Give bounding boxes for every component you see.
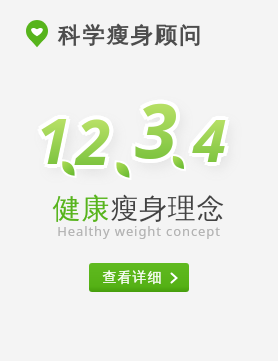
staticText: 4 [196, 101, 230, 183]
staticText: 1 [36, 98, 71, 182]
staticText: 2 [79, 102, 114, 186]
staticText: 2 [79, 96, 114, 180]
staticText: 1 [36, 102, 71, 186]
staticText: 3 [135, 81, 177, 185]
staticText: 3 [138, 74, 180, 178]
staticText: 健康瘦身理念 [0, 191, 278, 226]
staticText: 4 [189, 98, 223, 180]
staticText: 2 [76, 99, 111, 183]
staticText: 3 [135, 73, 177, 177]
staticText: 2 [80, 99, 115, 183]
staticText: 4 [197, 98, 231, 180]
staticText: 查看详细 [102, 269, 162, 287]
staticText: 1 [39, 95, 74, 179]
staticText: 3 [139, 77, 181, 181]
staticText: 4 [196, 95, 230, 177]
staticText: 1 [32, 98, 67, 182]
staticText: 3 [131, 77, 173, 181]
staticText: 2 [76, 95, 111, 179]
button[interactable]: 查看详细 [89, 263, 189, 292]
staticText: 2 [76, 103, 111, 187]
button[interactable]: 科学瘦身顾问 [24, 17, 204, 48]
staticText: 3 [135, 77, 177, 181]
staticText: 4 [193, 98, 227, 180]
staticText: 科学瘦身顾问 [58, 22, 204, 50]
staticText: 4 [190, 101, 224, 183]
staticText: 3 [132, 74, 174, 178]
staticText: 2 [73, 96, 108, 180]
staticText: 1 [40, 98, 75, 182]
staticText: 4 [190, 95, 224, 177]
staticText: 2 [72, 99, 107, 183]
staticText: 1 [39, 101, 74, 185]
staticText: 1 [33, 101, 68, 185]
staticText: 3 [135, 77, 177, 181]
staticText: 1 [36, 98, 71, 182]
staticText: 2 [73, 102, 108, 186]
staticText: 3 [132, 80, 174, 184]
staticText: 4 [193, 94, 227, 176]
staticText: 4 [193, 98, 227, 180]
staticText: 1 [33, 95, 68, 179]
staticText: Healthy weight concept [0, 222, 278, 240]
staticText: 3 [138, 80, 180, 184]
staticText: 1 [36, 94, 71, 178]
staticText: 4 [193, 102, 227, 184]
staticText: 2 [76, 99, 111, 183]
